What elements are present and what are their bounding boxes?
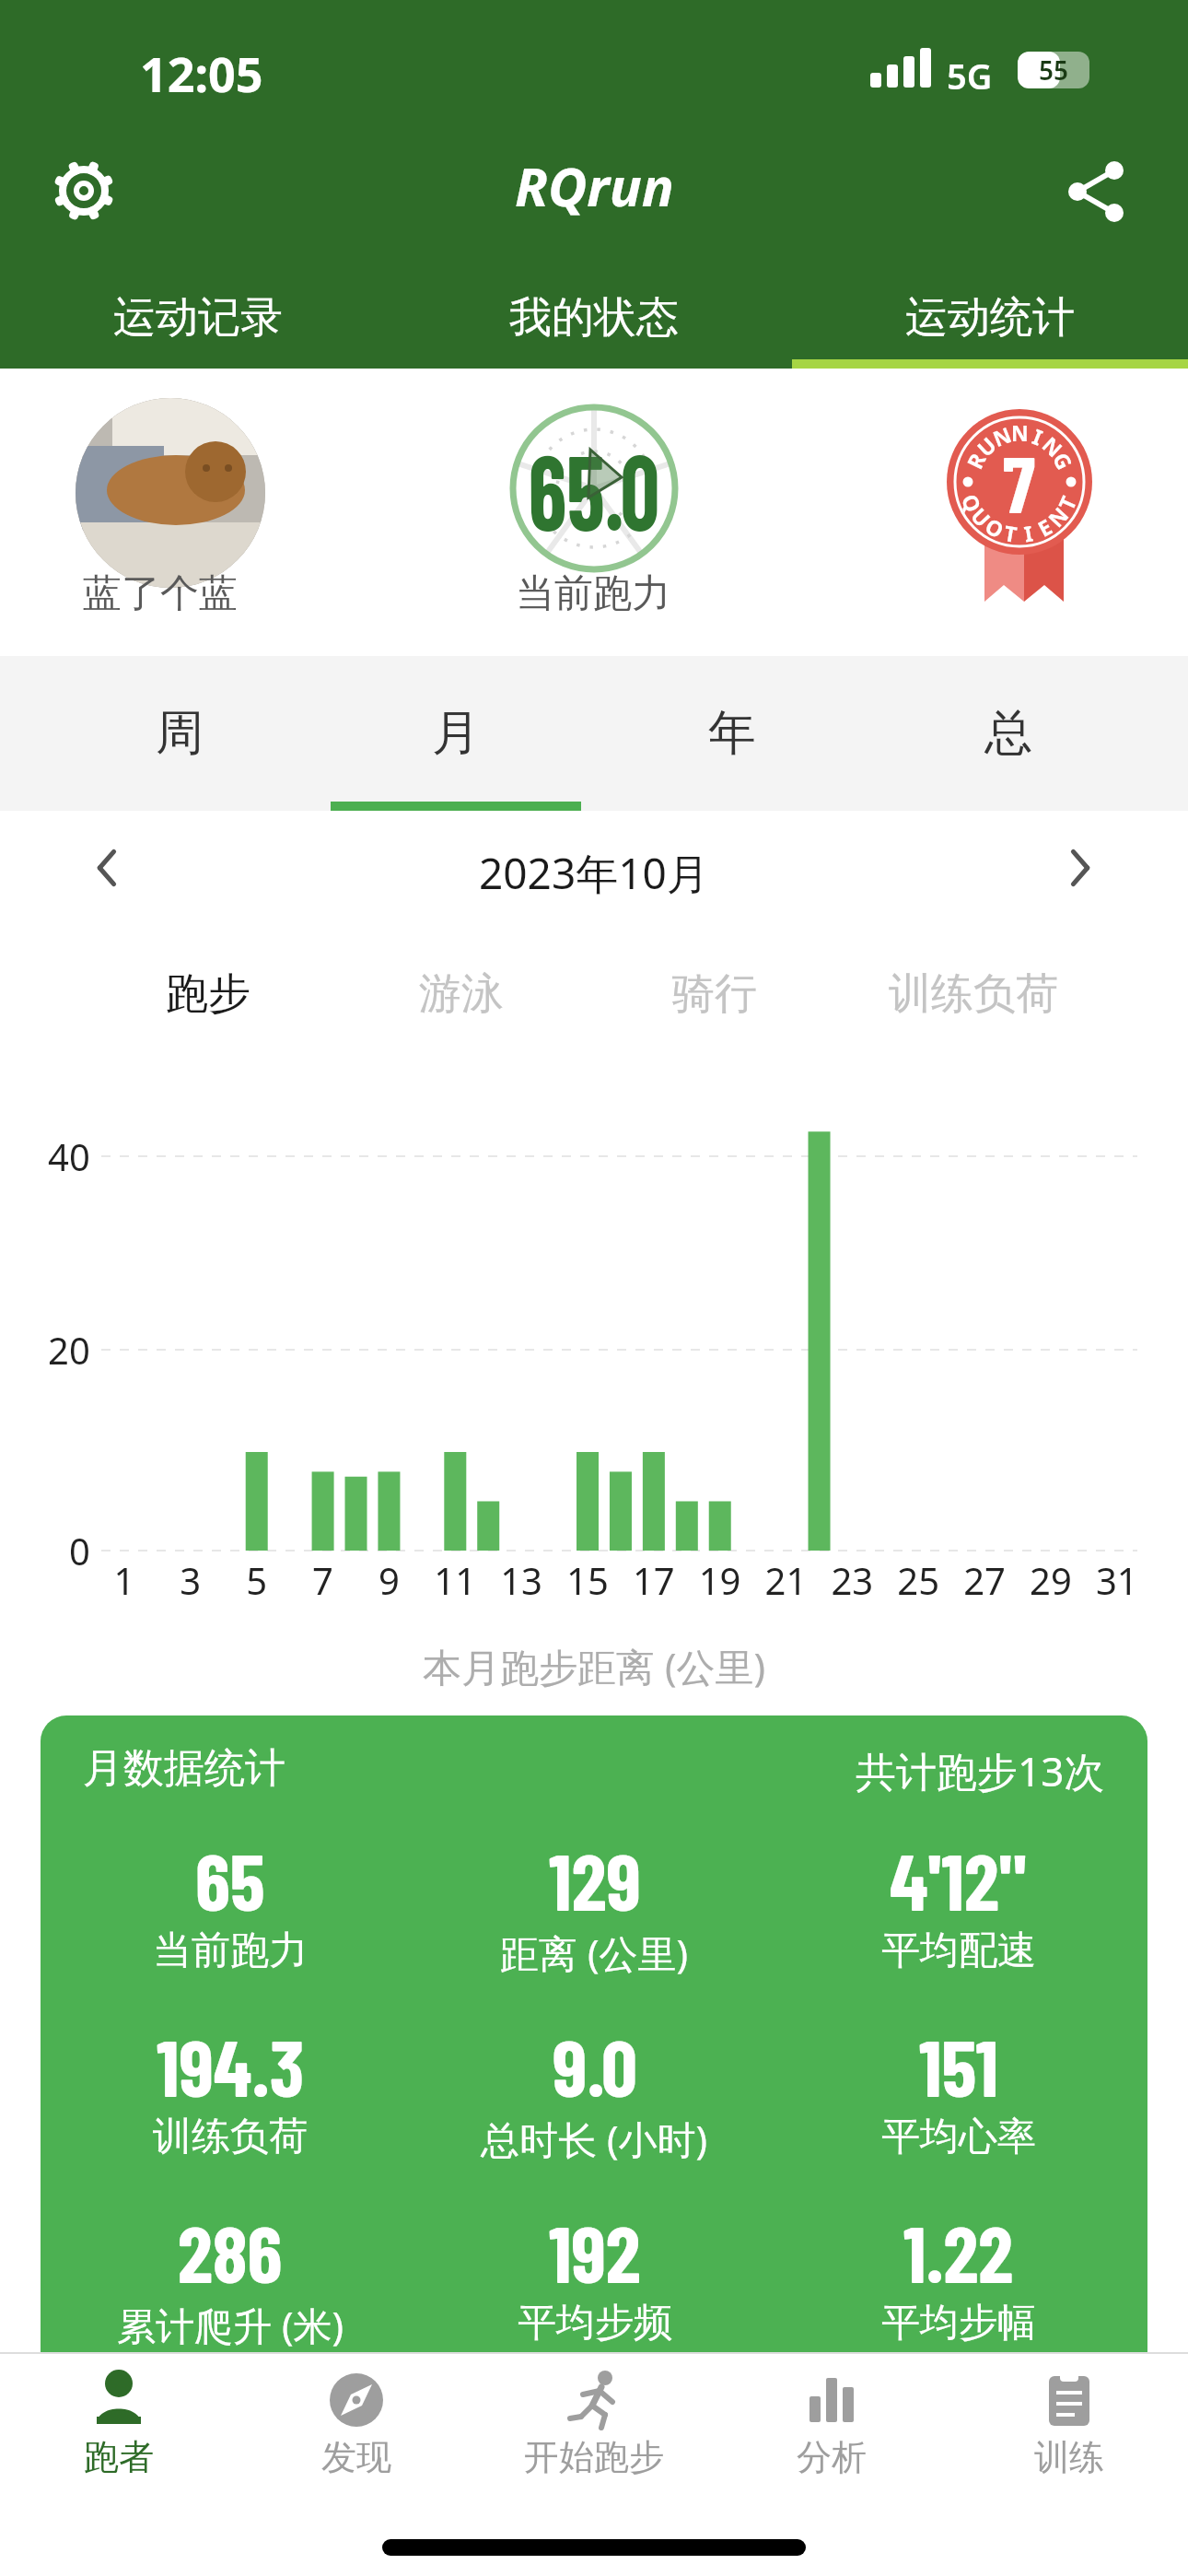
- staticText: 4'12": [890, 1832, 1027, 1926]
- staticText: 65: [195, 1832, 265, 1926]
- staticText: 65.0: [528, 425, 660, 552]
- staticText: N: [989, 419, 1014, 450]
- staticText: 月: [432, 703, 480, 764]
- staticText: 平均步频: [518, 2299, 672, 2348]
- staticText: 286: [178, 2204, 283, 2299]
- button[interactable]: 月: [318, 656, 594, 811]
- staticText: 5G: [947, 52, 993, 100]
- staticText: 2023年10月: [479, 844, 709, 902]
- staticText: 平均配速: [881, 1926, 1036, 1975]
- staticText: 训练负荷: [153, 2113, 308, 2161]
- staticText: 蓝了个蓝: [83, 569, 238, 618]
- staticText: 1.22: [903, 2204, 1013, 2299]
- staticText: N: [1041, 500, 1072, 531]
- staticText: 平均步幅: [881, 2299, 1036, 2348]
- staticText: G: [1050, 447, 1080, 473]
- staticText: 194.3: [157, 2018, 305, 2113]
- staticText: R: [960, 447, 989, 472]
- staticText: RQrun: [515, 149, 674, 222]
- button[interactable]: 开始跑步: [475, 2352, 713, 2509]
- staticText: 当前跑力: [516, 569, 670, 618]
- button[interactable]: [1066, 161, 1127, 222]
- staticText: 总时长 (小时): [481, 2113, 708, 2165]
- staticText: 距离 (公里): [500, 1926, 689, 1979]
- button[interactable]: 年: [594, 656, 870, 811]
- staticText: 55: [1039, 53, 1069, 88]
- staticText: 共计跑步13次: [856, 1743, 1105, 1798]
- staticText: Q: [958, 489, 989, 516]
- staticText: T: [1051, 491, 1080, 513]
- staticText: 发现: [321, 2435, 391, 2479]
- staticText: 192: [549, 2204, 641, 2299]
- staticText: 运动记录: [113, 291, 283, 345]
- button[interactable]: 我的状态: [396, 267, 792, 369]
- button[interactable]: 周: [41, 656, 318, 811]
- staticText: U: [968, 501, 998, 531]
- staticText: 运动统计: [905, 291, 1075, 345]
- staticText: T: [1003, 518, 1020, 545]
- button[interactable]: 游泳: [419, 967, 504, 1021]
- button[interactable]: [76, 398, 265, 588]
- staticText: 本月跑步距离 (公里): [423, 1640, 766, 1692]
- staticText: 151: [919, 2018, 998, 2113]
- staticText: 当前跑力: [153, 1926, 308, 1975]
- staticText: U: [971, 430, 1000, 460]
- staticText: I: [1022, 518, 1034, 545]
- staticText: E: [1032, 512, 1055, 540]
- staticText: 年: [708, 703, 756, 764]
- button[interactable]: 训练: [950, 2352, 1188, 2509]
- staticText: 129: [549, 1832, 641, 1926]
- staticText: 训练: [1034, 2435, 1104, 2479]
- button[interactable]: [87, 848, 128, 888]
- button[interactable]: [1059, 848, 1100, 888]
- button[interactable]: 总: [870, 656, 1147, 811]
- staticText: 分析: [797, 2435, 867, 2479]
- staticText: 平均心率: [881, 2113, 1036, 2161]
- staticText: N: [1011, 418, 1029, 444]
- button[interactable]: [52, 158, 116, 223]
- staticText: 周: [156, 703, 204, 764]
- staticText: O: [982, 511, 1010, 542]
- button[interactable]: 运动记录: [0, 267, 396, 369]
- staticText: N: [1039, 430, 1069, 461]
- button[interactable]: 分析: [713, 2352, 950, 2509]
- staticText: 跑者: [84, 2435, 154, 2479]
- button[interactable]: 跑步: [166, 967, 250, 1021]
- staticText: 开始跑步: [524, 2435, 664, 2479]
- button[interactable]: 发现: [238, 2352, 475, 2509]
- staticText: 总: [984, 703, 1032, 764]
- button[interactable]: 运动统计: [792, 267, 1188, 369]
- staticText: 9.0: [553, 2018, 637, 2113]
- staticText: 12:05: [140, 41, 263, 106]
- staticText: 月数据统计: [83, 1743, 285, 1794]
- button[interactable]: 跑者: [0, 2352, 238, 2509]
- staticText: 我的状态: [509, 291, 679, 345]
- staticText: I: [1030, 422, 1047, 449]
- staticText: 7: [1003, 434, 1036, 529]
- button[interactable]: 训练负荷: [889, 967, 1058, 1021]
- staticText: 累计爬升 (米): [117, 2299, 344, 2351]
- button[interactable]: 骑行: [672, 967, 757, 1021]
